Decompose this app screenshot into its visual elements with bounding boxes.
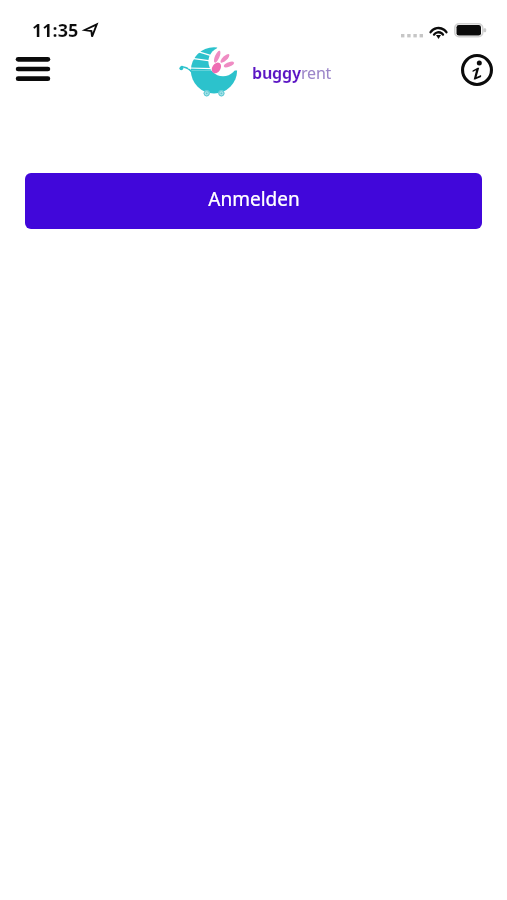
staticText: 11:35 xyxy=(32,18,79,43)
button[interactable]: Menu xyxy=(8,51,58,87)
staticText: buggy xyxy=(252,62,301,84)
staticText: rent xyxy=(301,62,332,84)
button[interactable]: Anmelden xyxy=(25,173,482,229)
staticText: Anmelden xyxy=(208,186,300,212)
button[interactable]: Info xyxy=(455,48,499,92)
